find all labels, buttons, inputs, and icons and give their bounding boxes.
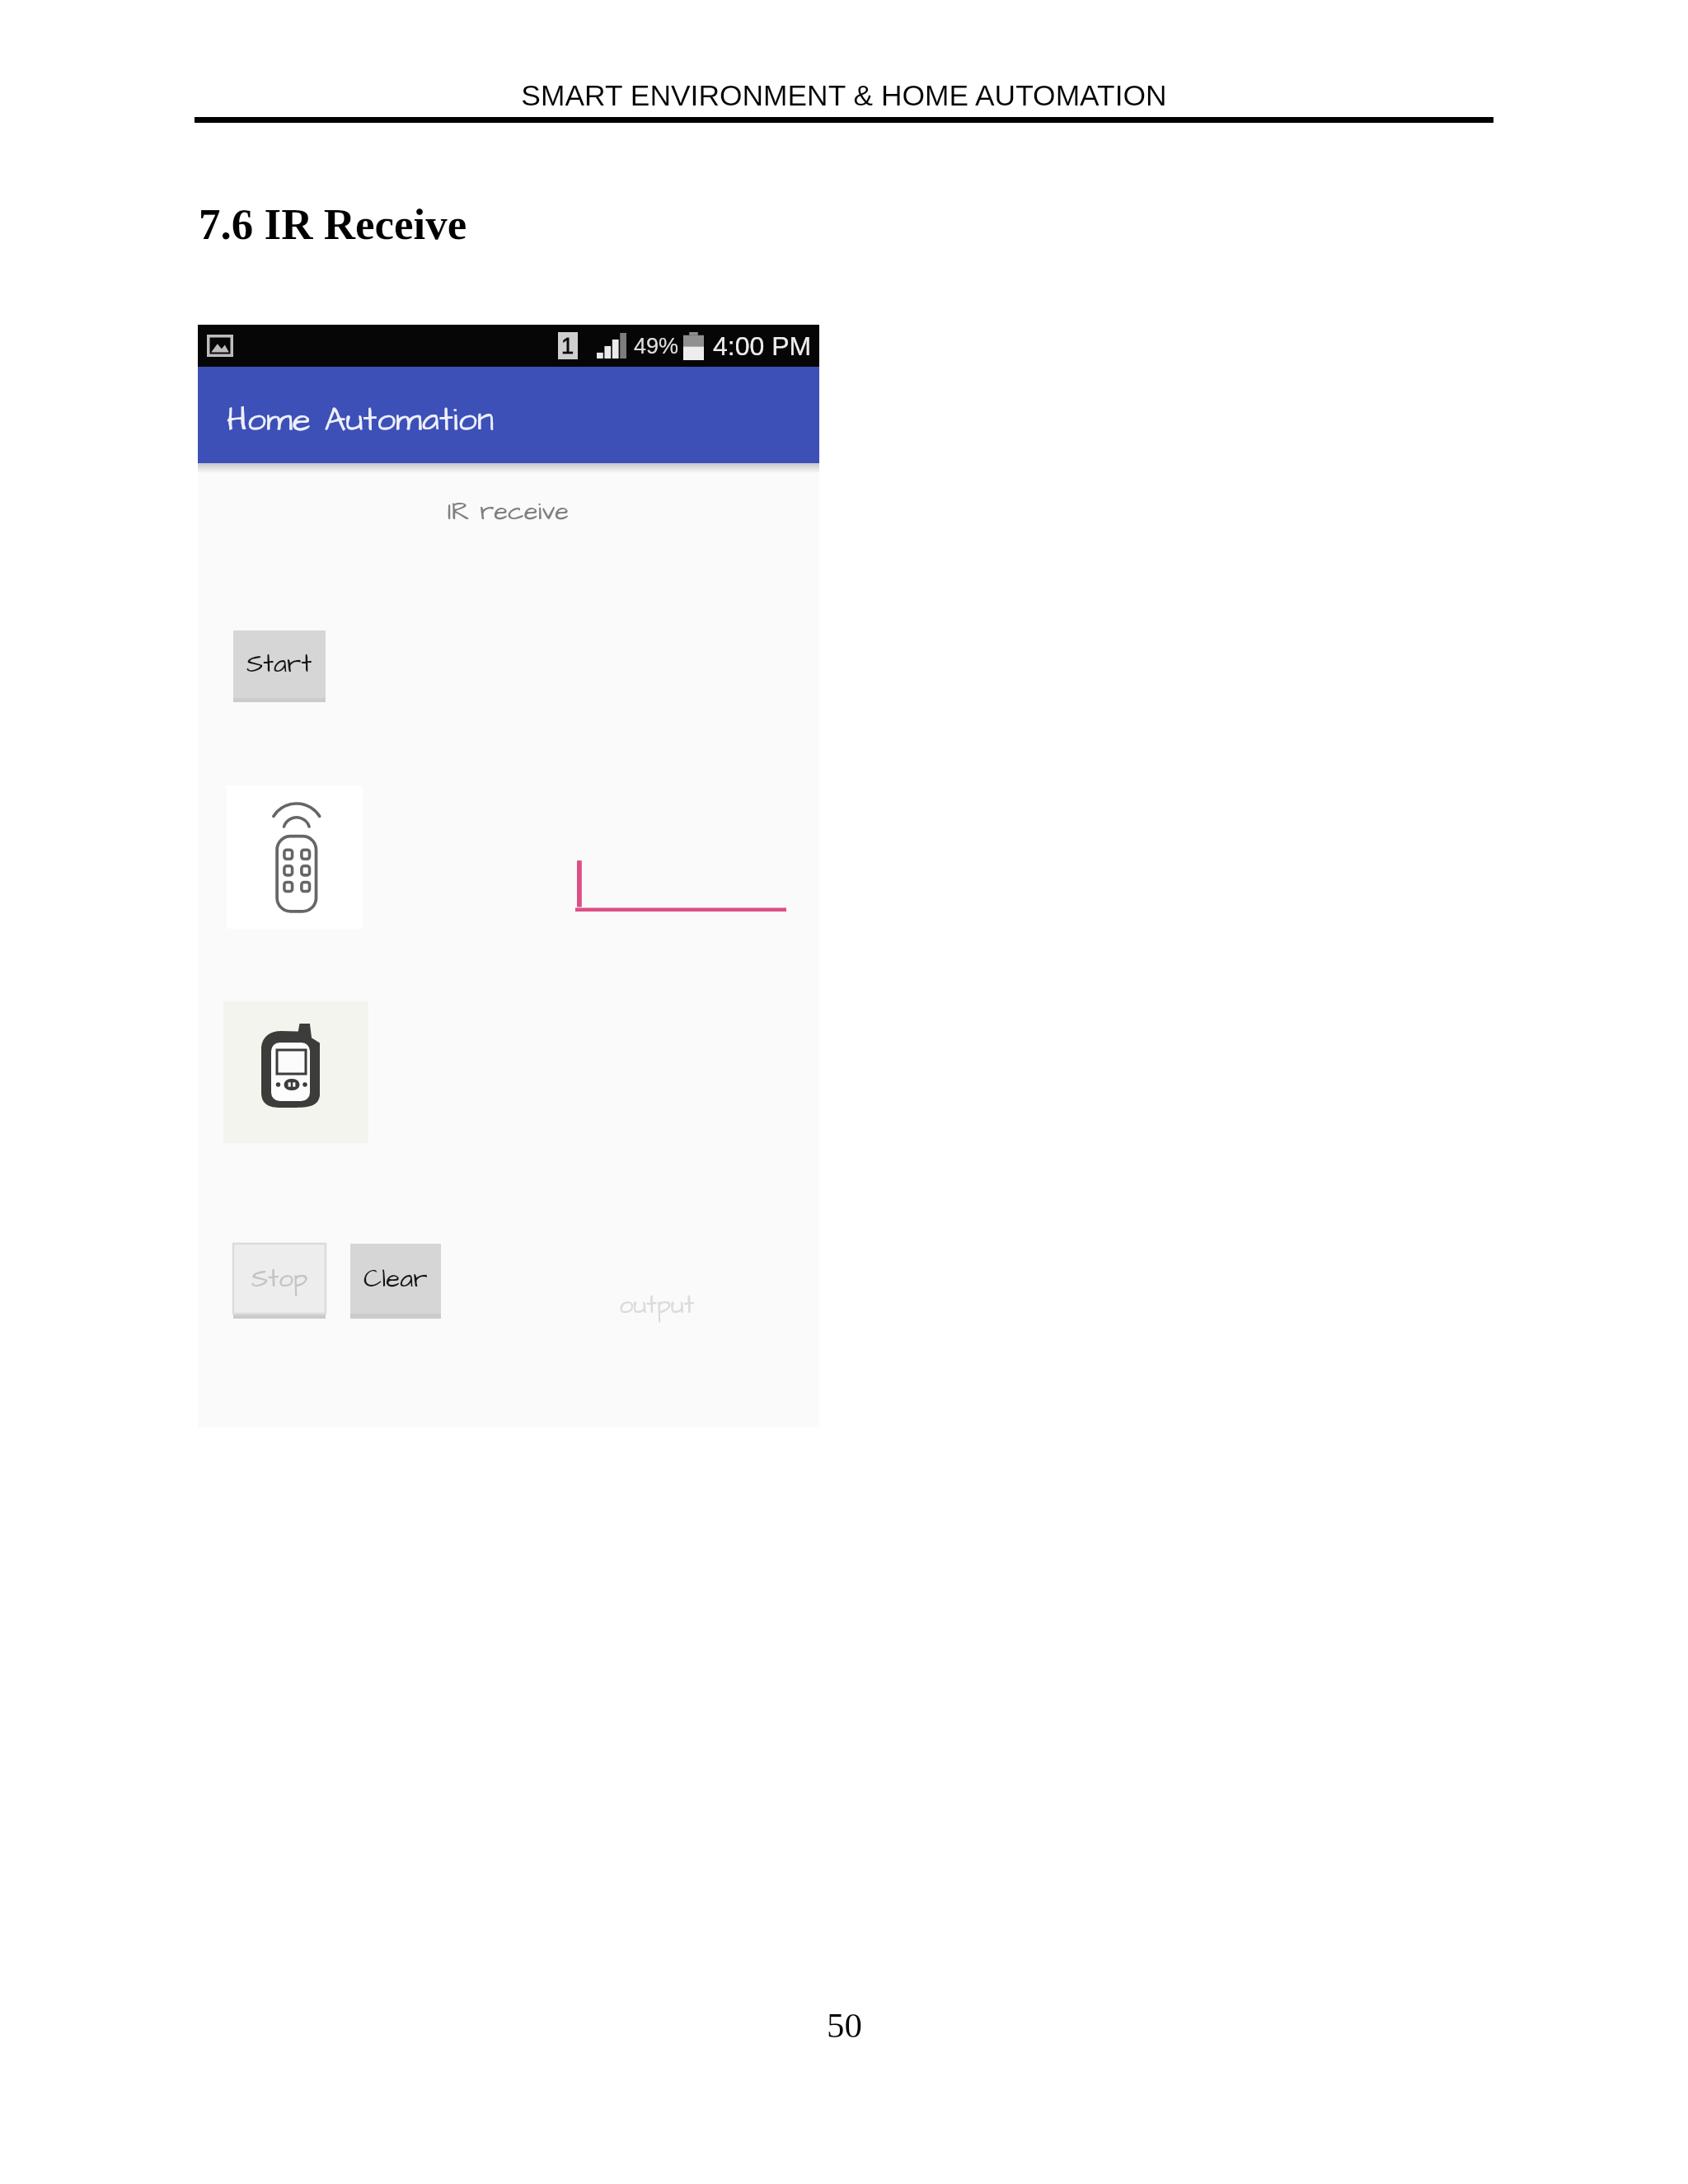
button[interactable]: Clear	[350, 1244, 441, 1314]
staticText: 1	[561, 334, 574, 359]
staticText: IR receive	[448, 494, 570, 529]
staticText: 50	[827, 2006, 862, 2046]
staticText: 49%	[634, 334, 679, 359]
staticText: output	[619, 1287, 695, 1323]
button[interactable]: Received code field	[575, 855, 786, 912]
staticText: SMART ENVIRONMENT & HOME AUTOMATION	[521, 79, 1167, 112]
button[interactable]: IR remote	[227, 785, 363, 929]
staticText: 7.6 IR Receive	[199, 200, 467, 249]
staticText: Start	[246, 646, 312, 682]
button[interactable]: Mobile phone	[223, 1001, 368, 1143]
button[interactable]: Stop	[233, 1244, 326, 1314]
staticText: Clear	[363, 1261, 428, 1297]
button[interactable]: Start	[233, 630, 326, 698]
staticText: Home Automation	[227, 397, 495, 444]
staticText: Stop	[251, 1261, 308, 1297]
staticText: 4:00 PM	[713, 331, 812, 361]
